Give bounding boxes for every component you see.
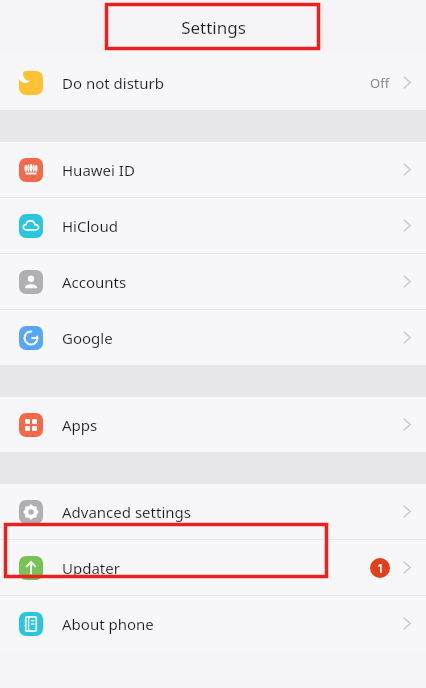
button[interactable]: Do not disturb <box>0 55 426 110</box>
button[interactable]: HiCloud <box>0 198 426 253</box>
staticText: HiCloud <box>62 216 402 236</box>
button[interactable]: Google <box>0 310 426 365</box>
button[interactable]: Apps <box>0 397 426 452</box>
button[interactable]: Advanced settings <box>0 484 426 539</box>
staticText: Off <box>370 74 390 92</box>
staticText: Advanced settings <box>62 502 402 522</box>
staticText: 1 <box>377 560 384 576</box>
staticText: Do not disturb <box>62 73 370 93</box>
staticText: Accounts <box>62 272 402 292</box>
staticText: Updater <box>62 558 370 578</box>
staticText: About phone <box>62 614 402 634</box>
button[interactable]: About phone <box>0 596 426 651</box>
button[interactable]: Huawei ID <box>0 142 426 197</box>
staticText: Google <box>62 328 402 348</box>
staticText: Apps <box>62 415 402 435</box>
staticText: Settings <box>181 16 246 39</box>
button[interactable]: Updater <box>0 540 426 595</box>
button[interactable]: Accounts <box>0 254 426 309</box>
staticText: Huawei ID <box>62 160 402 180</box>
